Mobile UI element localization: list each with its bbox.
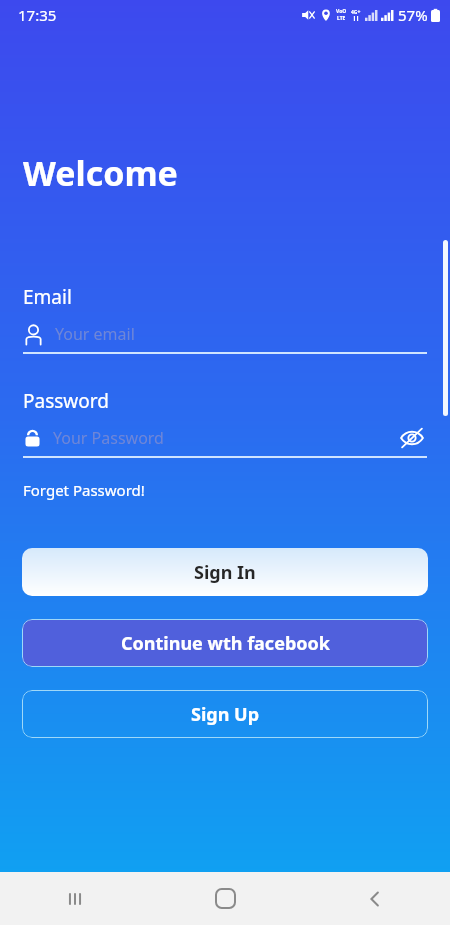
staticText: Continue wth facebook: [121, 631, 330, 656]
staticText: Password: [23, 388, 109, 414]
button[interactable]: Recent apps: [0, 872, 150, 925]
button[interactable]: Continue wth facebook: [22, 619, 428, 667]
button[interactable]: Back: [300, 872, 450, 925]
button[interactable]: Sign Up: [22, 690, 428, 738]
staticText: 17:35: [18, 5, 57, 25]
staticText: Email: [23, 284, 72, 310]
staticText: VoO: [336, 8, 347, 15]
staticText: Your email: [55, 323, 135, 345]
staticText: Forget Password!: [23, 480, 145, 500]
button[interactable]: Sign In: [22, 548, 428, 596]
staticText: 4G+: [351, 9, 361, 16]
button[interactable]: Show password: [397, 423, 427, 453]
button[interactable]: Forget Password!: [23, 480, 145, 500]
button[interactable]: Your Password: [23, 423, 427, 453]
button[interactable]: Home: [150, 872, 300, 925]
staticText: LTE: [337, 15, 346, 22]
staticText: Sign Up: [191, 702, 260, 727]
button[interactable]: Your email: [23, 319, 427, 349]
staticText: Welcome: [23, 150, 178, 196]
staticText: 57%: [398, 5, 428, 25]
staticText: Sign In: [194, 560, 256, 585]
staticText: Your Password: [53, 427, 397, 449]
